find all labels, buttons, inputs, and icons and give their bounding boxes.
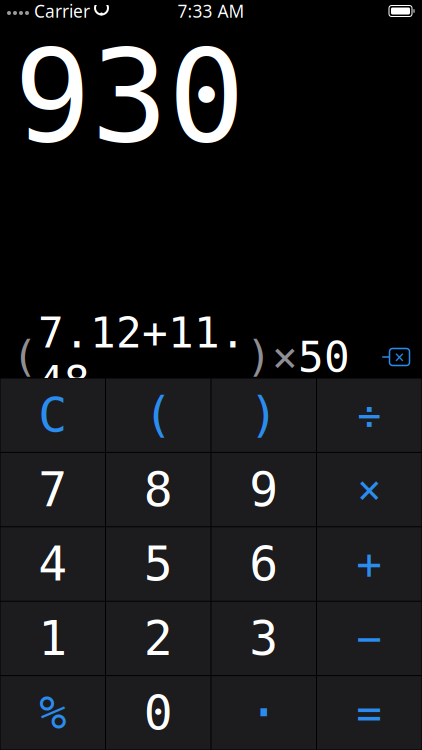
button[interactable]: − <box>317 602 421 675</box>
staticText: 8 <box>144 462 173 517</box>
staticText: 7:33 AM <box>177 0 244 22</box>
staticText: × <box>394 345 404 368</box>
staticText: 5 <box>144 537 173 591</box>
staticText: ( <box>12 333 38 381</box>
staticText: 6 <box>249 537 278 591</box>
staticText: = <box>356 689 382 737</box>
button[interactable]: × <box>317 453 421 526</box>
button[interactable]: ( <box>106 378 210 452</box>
staticText: % <box>39 687 66 739</box>
staticText: ÷ <box>357 392 381 438</box>
staticText: 7 <box>38 462 67 517</box>
button[interactable]: Delete <box>370 336 422 378</box>
button[interactable]: 0 <box>106 676 210 749</box>
staticText: 0 <box>144 686 173 740</box>
staticText: 1 <box>38 611 67 666</box>
staticText: · <box>248 682 280 743</box>
button[interactable]: 5 <box>106 527 210 601</box>
button[interactable]: · <box>211 676 316 749</box>
button[interactable]: + <box>317 527 421 601</box>
button[interactable]: 6 <box>211 527 316 601</box>
staticText: 50 <box>298 333 350 381</box>
staticText: 2 <box>144 611 173 666</box>
button[interactable]: 3 <box>211 602 316 675</box>
staticText: ( <box>144 388 173 442</box>
staticText: + <box>356 540 382 588</box>
button[interactable]: 7 <box>0 453 105 526</box>
button[interactable]: 4 <box>0 527 105 601</box>
staticText: 9 <box>249 462 278 517</box>
staticText: 3 <box>249 611 278 666</box>
button[interactable]: C <box>0 378 105 452</box>
staticText: × <box>357 467 381 512</box>
staticText: 7.12+11.48 <box>38 309 246 405</box>
button[interactable]: 9 <box>211 453 316 526</box>
staticText: ) <box>249 388 278 442</box>
button[interactable]: 2 <box>106 602 210 675</box>
staticText: 930 <box>14 24 245 169</box>
button[interactable]: 1 <box>0 602 105 675</box>
staticText: × <box>272 333 298 381</box>
staticText: 4 <box>38 537 67 591</box>
staticText: C <box>38 388 67 442</box>
button[interactable]: % <box>0 676 105 749</box>
staticText: Carrier <box>34 0 90 22</box>
staticText: − <box>356 614 382 663</box>
button[interactable]: = <box>317 676 421 749</box>
staticText: ) <box>246 333 272 381</box>
button[interactable]: ) <box>211 378 316 452</box>
button[interactable]: ÷ <box>317 378 421 452</box>
button[interactable]: 8 <box>106 453 210 526</box>
